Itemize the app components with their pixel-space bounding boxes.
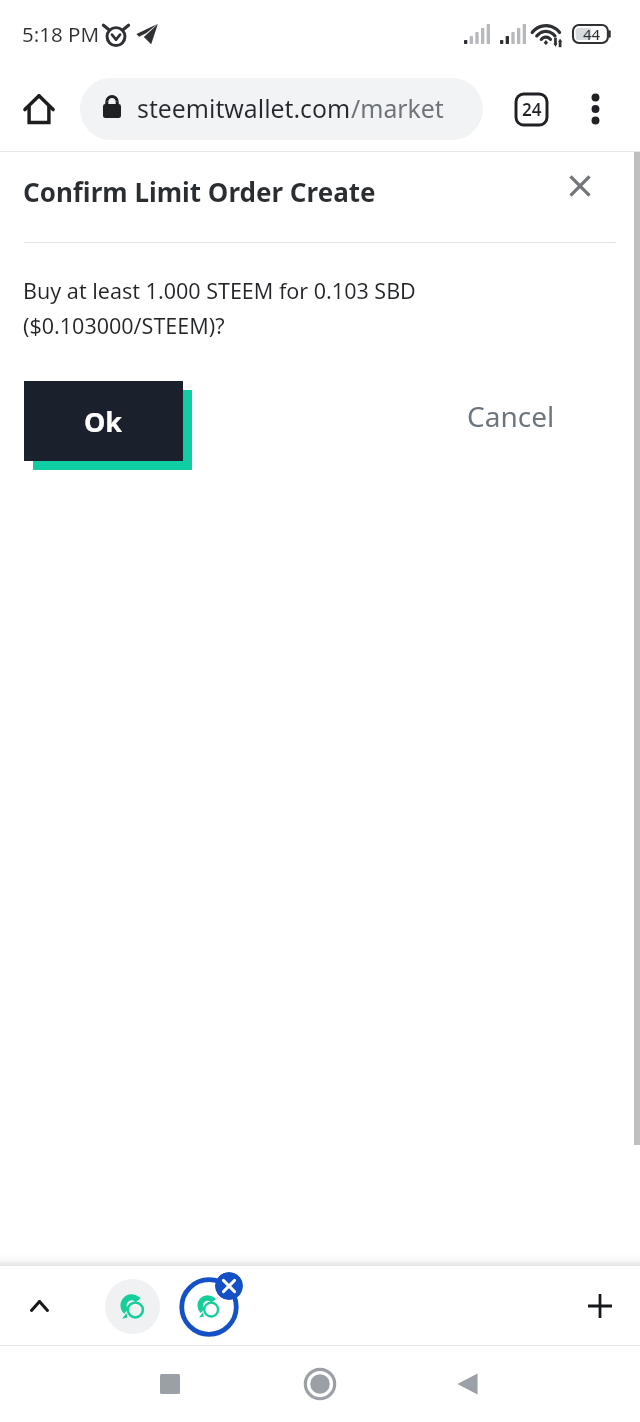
staticText: 5:18 PM bbox=[22, 20, 99, 48]
staticText: 44 bbox=[583, 24, 601, 44]
button[interactable]: Recent apps bbox=[141, 1355, 199, 1413]
button[interactable]: Cancel bbox=[444, 388, 578, 444]
staticText: Confirm Limit Order Create bbox=[23, 174, 376, 209]
button[interactable]: Steemit tab bbox=[105, 1279, 160, 1334]
button[interactable]: Ok bbox=[24, 381, 183, 461]
button[interactable]: Close dialog bbox=[556, 162, 604, 210]
staticText: Cancel bbox=[467, 397, 555, 435]
button[interactable]: Home bbox=[291, 1355, 349, 1413]
button[interactable]: New tab bbox=[573, 1279, 627, 1333]
button[interactable]: Home bbox=[13, 83, 65, 135]
staticText: Buy at least 1.000 STEEM for 0.103 SBD bbox=[23, 276, 416, 305]
button[interactable]: steemitwallet.com bbox=[80, 78, 483, 140]
button[interactable]: Back bbox=[438, 1355, 496, 1413]
button[interactable]: More options bbox=[568, 82, 622, 136]
staticText: ($0.103000/STEEM)? bbox=[23, 311, 225, 340]
button[interactable]: Current tab bbox=[178, 1276, 239, 1337]
staticText: 24 bbox=[522, 98, 542, 121]
staticText: Ok bbox=[84, 403, 123, 440]
staticText: steemitwallet.com bbox=[137, 91, 351, 125]
button[interactable]: Expand tab switcher bbox=[13, 1280, 65, 1332]
button[interactable]: Switch tabs, 24 open bbox=[504, 82, 558, 136]
staticText: /market bbox=[351, 91, 444, 125]
button[interactable]: Close tab bbox=[215, 1272, 243, 1300]
